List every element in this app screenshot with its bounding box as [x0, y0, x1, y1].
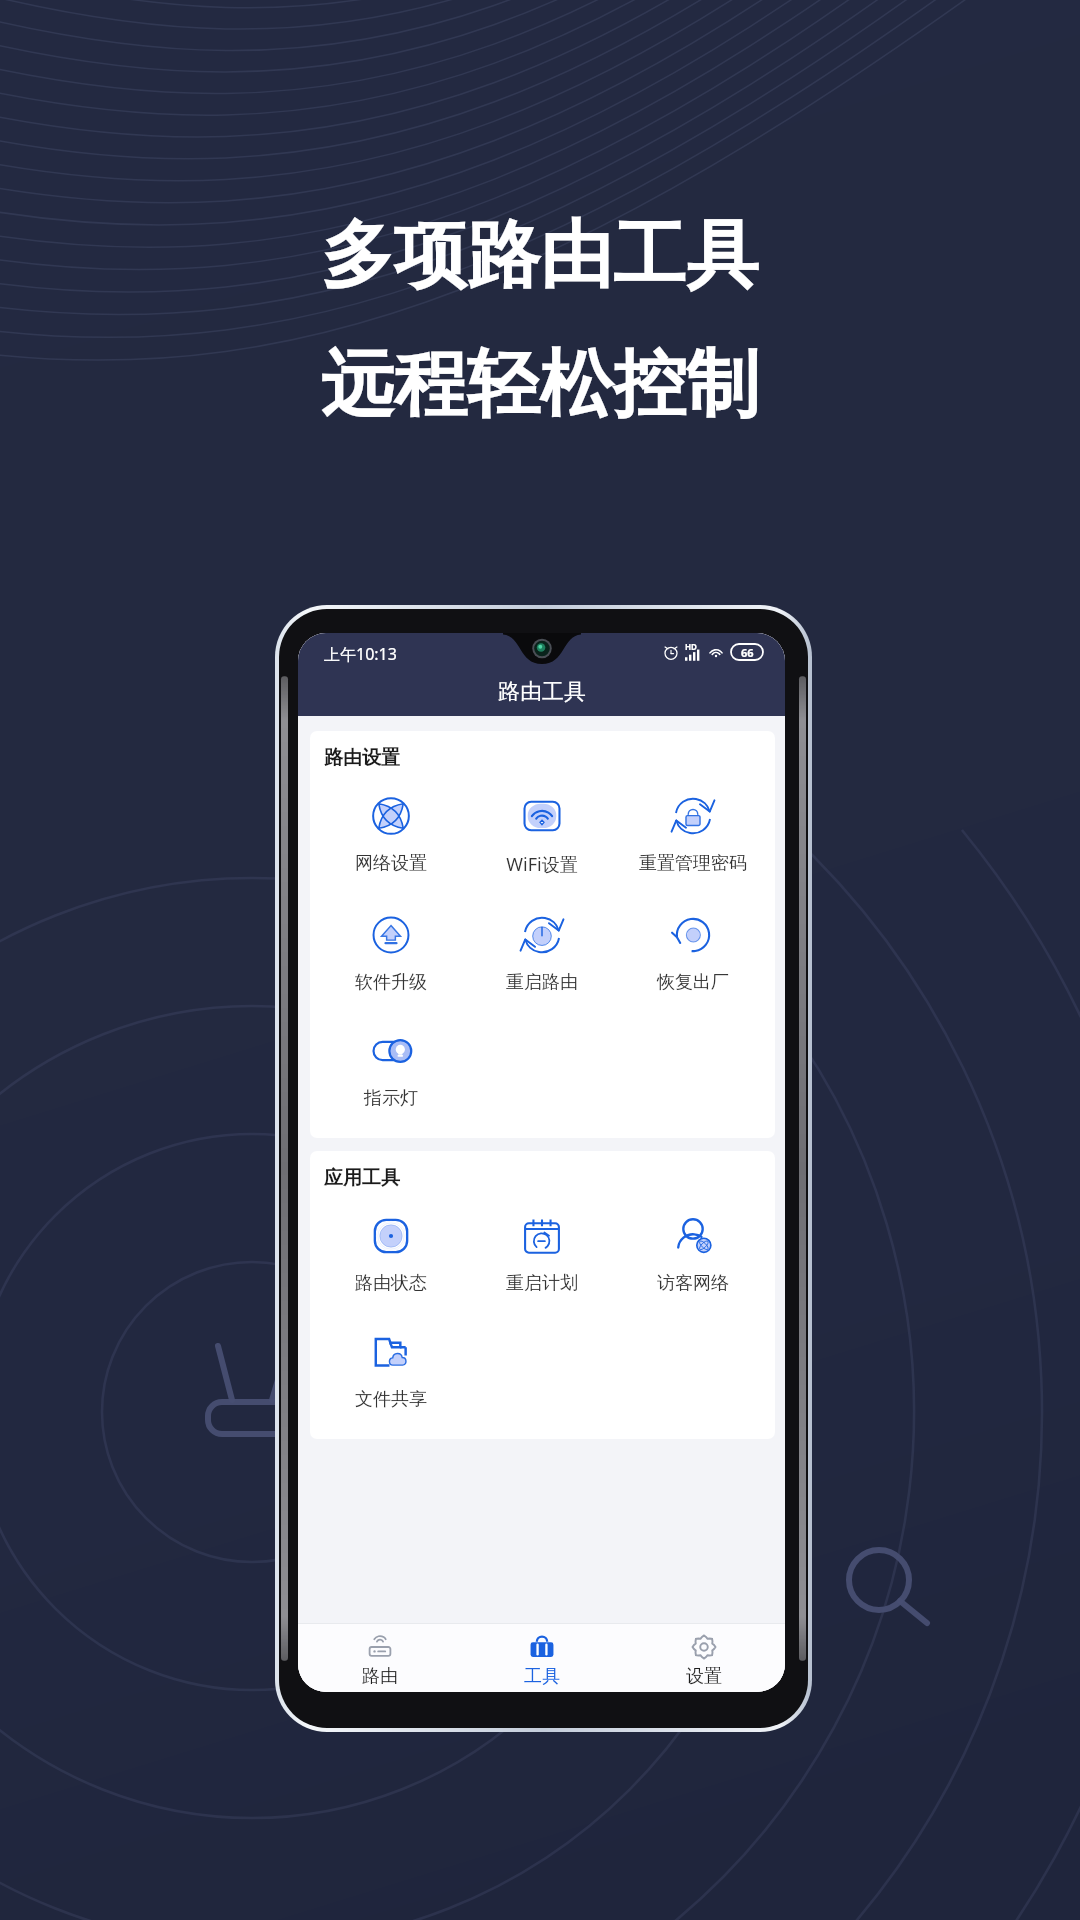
- staticText: 软件升级: [355, 971, 427, 994]
- staticText: 网络设置: [355, 852, 427, 875]
- staticText: 上午10:13: [324, 643, 397, 665]
- staticText: 指示灯: [364, 1087, 418, 1110]
- staticText: 多项路由工具: [321, 210, 759, 302]
- staticText: 设置: [686, 1665, 722, 1688]
- staticText: HD: [685, 641, 697, 652]
- button[interactable]: 路由: [298, 1624, 461, 1692]
- staticText: 应用工具: [324, 1166, 400, 1190]
- button[interactable]: 访客网络: [617, 1216, 768, 1316]
- staticText: 路由状态: [355, 1272, 427, 1295]
- button[interactable]: WiFi设置: [466, 796, 617, 896]
- staticText: 路由设置: [324, 746, 400, 770]
- staticText: 重置管理密码: [639, 852, 747, 875]
- staticText: 文件共享: [355, 1388, 427, 1411]
- button[interactable]: 重置管理密码: [617, 796, 768, 896]
- button[interactable]: 设置: [623, 1624, 785, 1692]
- staticText: 路由: [362, 1665, 398, 1688]
- button[interactable]: 指示灯: [315, 1031, 466, 1131]
- button[interactable]: 网络设置: [315, 796, 466, 896]
- button[interactable]: 恢复出厂: [617, 915, 768, 1015]
- button[interactable]: 重启路由: [466, 915, 617, 1015]
- button[interactable]: 工具: [461, 1624, 623, 1692]
- staticText: 工具: [524, 1665, 560, 1688]
- staticText: 重启路由: [506, 971, 578, 994]
- button[interactable]: 重启计划: [466, 1216, 617, 1316]
- staticText: 恢复出厂: [657, 971, 729, 994]
- staticText: WiFi设置: [506, 852, 578, 877]
- staticText: 66: [741, 645, 754, 660]
- staticText: 访客网络: [657, 1272, 729, 1295]
- button[interactable]: 文件共享: [315, 1332, 466, 1432]
- staticText: 远程轻松控制: [321, 339, 759, 431]
- button[interactable]: 路由状态: [315, 1216, 466, 1316]
- button[interactable]: 软件升级: [315, 915, 466, 1015]
- staticText: 重启计划: [506, 1272, 578, 1295]
- staticText: 路由工具: [498, 678, 586, 706]
